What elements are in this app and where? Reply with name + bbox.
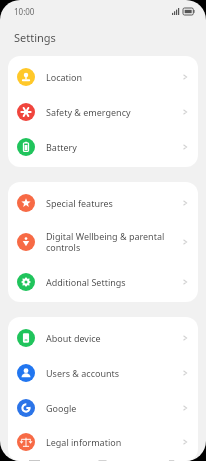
staticText: Digital Wellbeing & parental controls — [46, 230, 172, 254]
button[interactable]: Digital Wellbeing & parental controls — [8, 220, 198, 264]
button[interactable]: Safety & emergency — [8, 94, 198, 129]
staticText: Settings — [14, 30, 56, 45]
button[interactable]: Legal information — [8, 425, 198, 458]
button[interactable]: Users & accounts — [8, 355, 198, 390]
staticText: Google — [46, 402, 172, 414]
button[interactable]: Google — [8, 390, 198, 425]
button[interactable]: Special features — [8, 185, 198, 220]
button[interactable]: About device — [8, 320, 198, 355]
staticText: About device — [46, 332, 172, 344]
staticText: Safety & emergency — [46, 106, 172, 118]
button[interactable]: Battery — [8, 129, 198, 164]
staticText: Battery — [46, 141, 172, 153]
staticText: Special features — [46, 197, 172, 209]
staticText: Additional Settings — [46, 276, 172, 288]
staticText: Location — [46, 71, 172, 83]
staticText: 10:00 — [14, 6, 35, 17]
staticText: Users & accounts — [46, 367, 172, 379]
button[interactable]: Additional Settings — [8, 264, 198, 299]
staticText: Legal information — [46, 436, 172, 448]
button[interactable]: Location — [8, 59, 198, 94]
